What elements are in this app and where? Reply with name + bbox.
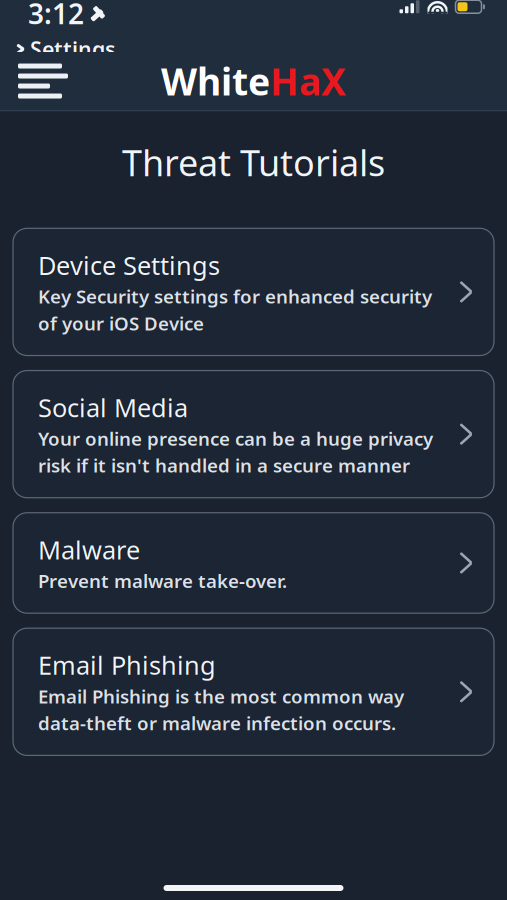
staticText: Key Security settings for enhanced secur… xyxy=(38,284,432,335)
button[interactable]: Device Settings xyxy=(13,228,494,355)
button[interactable]: Menu xyxy=(0,53,82,108)
button[interactable]: Settings xyxy=(12,33,120,65)
staticText: Settings xyxy=(30,35,116,63)
staticText: Your online presence can be a huge priva… xyxy=(38,426,433,478)
staticText: Email Phishing xyxy=(38,648,216,682)
staticText: White xyxy=(161,56,270,106)
staticText: Malware xyxy=(38,533,140,566)
staticText: HaX xyxy=(270,56,346,106)
staticText: Threat Tutorials xyxy=(122,138,385,186)
button[interactable]: Social Media xyxy=(13,370,494,498)
staticText: Email Phishing is the most common way da… xyxy=(38,684,404,735)
button[interactable]: Email Phishing xyxy=(13,628,494,755)
staticText: Prevent malware take-over. xyxy=(38,568,287,593)
staticText: Social Media xyxy=(38,390,188,424)
staticText: 3:12 xyxy=(28,0,84,32)
button[interactable]: Malware xyxy=(13,513,494,613)
staticText: Device Settings xyxy=(38,248,220,282)
